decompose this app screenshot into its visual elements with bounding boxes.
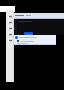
button[interactable]: Version control <box>8 26 12 30</box>
button[interactable]: Run configuration <box>8 32 12 36</box>
button[interactable]: Search everywhere <box>8 20 12 24</box>
button[interactable]: Terminal <box>8 38 12 42</box>
button[interactable]: Result item <box>14 35 56 45</box>
button[interactable]: Project tool window <box>8 14 12 18</box>
button[interactable]: Project tool window <box>6 10 14 82</box>
button[interactable] <box>24 32 33 36</box>
button[interactable] <box>14 13 64 19</box>
other: Result item <box>15 36 18 39</box>
